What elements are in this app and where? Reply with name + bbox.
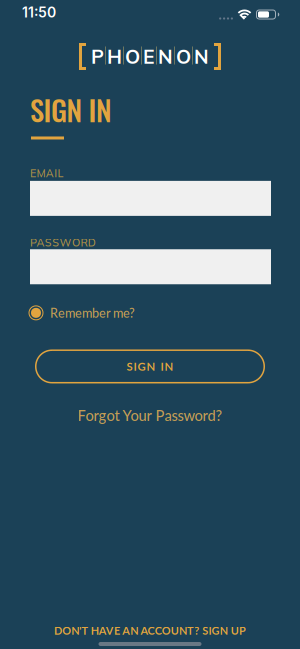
staticText: O [125,44,140,69]
staticText: P [91,44,104,69]
staticText: N [194,44,209,69]
staticText: N [158,44,173,69]
button[interactable]: Forgot Your Password? [0,406,300,424]
button[interactable]: Remember me? [0,305,135,320]
staticText: DON'T HAVE AN ACCOUNT? SIGN UP [54,624,246,637]
button[interactable] [0,249,300,284]
button[interactable] [0,181,300,216]
staticText: E [143,44,155,69]
staticText: Remember me? [50,305,135,320]
staticText: O [176,44,191,69]
staticText: 11:50 [22,4,56,21]
staticText: SIGN IN [30,88,112,130]
staticText: H [107,44,122,69]
button[interactable]: SIGN IN [0,349,300,383]
button[interactable]: DON'T HAVE AN ACCOUNT? SIGN UP [0,624,300,637]
staticText: PASSWORD [30,236,96,249]
staticText: SIGN IN [126,360,173,373]
staticText: Forgot Your Password? [77,406,222,424]
staticText: EMAIL [30,166,64,180]
